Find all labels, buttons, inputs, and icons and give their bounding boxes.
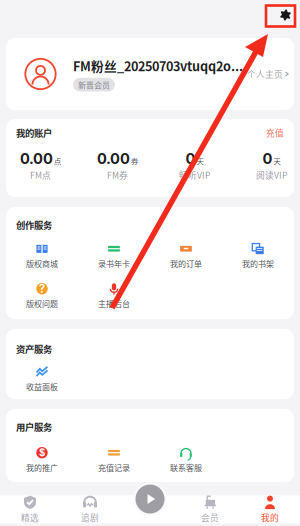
button[interactable]: 会员 bbox=[180, 495, 240, 523]
staticText: 版权商城 bbox=[26, 258, 58, 269]
staticText: 天 bbox=[273, 156, 280, 166]
staticText: 我的订单 bbox=[170, 258, 202, 269]
staticText: FM券 bbox=[107, 169, 128, 181]
staticText: 0 bbox=[262, 150, 272, 168]
button[interactable]: 充值记录 bbox=[78, 439, 150, 479]
button[interactable]: 充值 bbox=[266, 126, 284, 139]
staticText: 充值记录 bbox=[98, 462, 130, 473]
staticText: 联系客服 bbox=[170, 462, 202, 473]
staticText: 版权问题 bbox=[26, 298, 58, 309]
staticText: 阅读VIP bbox=[256, 169, 287, 181]
button[interactable]: 收益面板 bbox=[6, 358, 78, 398]
staticText: FM粉丝_20250703vtuqq2o... bbox=[73, 56, 243, 75]
staticText: ? bbox=[39, 282, 45, 295]
staticText: 追剧 bbox=[81, 511, 99, 524]
button[interactable]: ? bbox=[6, 275, 78, 315]
staticText: 天 bbox=[196, 156, 203, 166]
staticText: 0.00 bbox=[97, 150, 130, 168]
button[interactable]: Settings bbox=[273, 3, 297, 27]
staticText: 畅听VIP bbox=[179, 169, 210, 181]
button[interactable]: 版权商城 bbox=[6, 235, 78, 275]
button[interactable]: 我的书架 bbox=[222, 235, 294, 275]
staticText: 精选 bbox=[21, 511, 39, 524]
staticText: 0 bbox=[185, 150, 195, 168]
staticText: 个人主页 bbox=[247, 68, 283, 80]
staticText: 收益面板 bbox=[26, 381, 58, 392]
button[interactable]: 我的订单 bbox=[150, 235, 222, 275]
button[interactable]: 主播后台 bbox=[78, 275, 150, 315]
staticText: 我的账户 bbox=[16, 126, 52, 139]
staticText: 0.00 bbox=[20, 150, 53, 168]
button[interactable]: 录书年卡 bbox=[78, 235, 150, 275]
staticText: 券 bbox=[131, 156, 138, 166]
staticText: 点 bbox=[54, 156, 61, 166]
button[interactable]: 我的 bbox=[240, 495, 300, 523]
staticText: 我的 bbox=[261, 511, 279, 524]
staticText: 录书年卡 bbox=[98, 258, 130, 269]
staticText: 资产服务 bbox=[16, 342, 52, 355]
staticText: 会员 bbox=[201, 511, 219, 524]
staticText: 主播后台 bbox=[98, 298, 130, 309]
staticText: S bbox=[39, 447, 45, 458]
button[interactable]: S bbox=[6, 439, 78, 479]
button[interactable]: 追剧 bbox=[60, 495, 120, 523]
staticText: 充值 bbox=[266, 126, 284, 139]
staticText: 创作服务 bbox=[16, 218, 52, 231]
button[interactable]: 联系客服 bbox=[150, 439, 222, 479]
staticText: 我的推广 bbox=[26, 462, 58, 473]
button[interactable]: 精选 bbox=[0, 495, 60, 523]
button[interactable]: FM粉丝_20250703vtuqq2o... bbox=[6, 38, 294, 110]
staticText: 用户服务 bbox=[16, 420, 52, 433]
staticText: 我的书架 bbox=[242, 258, 274, 269]
button[interactable]: Play bbox=[133, 482, 166, 515]
staticText: FM点 bbox=[30, 169, 51, 181]
staticText: 新晋会员 bbox=[78, 79, 110, 90]
